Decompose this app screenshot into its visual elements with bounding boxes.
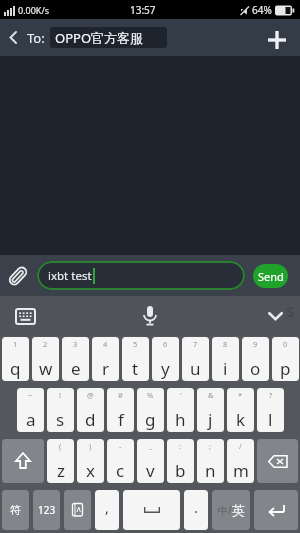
staticText: v	[146, 459, 155, 482]
button[interactable]: 8	[212, 337, 239, 381]
button[interactable]: ;	[197, 439, 224, 483]
button[interactable]: %	[137, 388, 164, 432]
button[interactable]: #	[107, 388, 134, 432]
staticText: To:	[27, 29, 45, 47]
staticText: 3	[73, 339, 78, 349]
button[interactable]: -	[107, 439, 134, 483]
button[interactable]: *	[227, 388, 254, 432]
staticText: x	[86, 459, 95, 482]
staticText: 符	[10, 503, 21, 517]
staticText: k	[236, 408, 246, 431]
button[interactable]: 0	[272, 337, 299, 381]
staticText: q	[10, 357, 21, 380]
staticText: b	[175, 459, 186, 482]
button[interactable]	[259, 296, 291, 336]
staticText: *	[238, 390, 243, 400]
staticText: &	[208, 390, 214, 400]
staticText: ixbt test	[48, 268, 92, 284]
button[interactable]: )	[77, 439, 104, 483]
staticText: %	[147, 390, 154, 400]
staticText: #	[118, 390, 123, 400]
staticText: 0	[283, 339, 288, 349]
button[interactable]: ?	[257, 388, 284, 432]
button[interactable]: 2	[32, 337, 59, 381]
staticText: OPPO官方客服	[55, 29, 144, 47]
staticText: ;	[209, 441, 212, 451]
button[interactable]: _	[137, 439, 164, 483]
staticText: (	[59, 441, 62, 451]
staticText: p	[280, 357, 291, 380]
button[interactable]: 中/	[212, 490, 250, 530]
staticText: 64%	[252, 3, 272, 17]
staticText: 1	[13, 339, 18, 349]
button[interactable]	[0, 255, 36, 296]
button[interactable]: '	[167, 388, 194, 432]
staticText: 英	[232, 502, 245, 518]
button[interactable]: /	[227, 439, 254, 483]
staticText: l	[268, 408, 273, 431]
button[interactable]	[257, 439, 298, 483]
staticText: d	[85, 408, 96, 431]
staticText: _	[149, 441, 153, 451]
button[interactable]: .	[184, 490, 208, 530]
button[interactable]: 5	[122, 337, 149, 381]
button[interactable]: 3	[62, 337, 89, 381]
staticText: 7	[193, 339, 198, 349]
staticText: -	[119, 441, 122, 451]
button[interactable]	[260, 19, 294, 56]
button[interactable]: OPPO官方客服	[50, 27, 167, 48]
staticText: 13:57	[130, 3, 156, 17]
staticText: ~	[28, 390, 33, 400]
staticText: a	[26, 408, 36, 431]
staticText: :	[179, 441, 182, 451]
button[interactable]: Send	[253, 264, 288, 288]
button[interactable]	[254, 490, 298, 530]
staticText: 8	[223, 339, 228, 349]
button[interactable]	[2, 439, 44, 483]
staticText: 6	[163, 339, 168, 349]
staticText: 2	[43, 339, 48, 349]
button[interactable]	[0, 19, 26, 56]
button[interactable]: ixbt test	[37, 261, 245, 290]
staticText: e	[71, 357, 81, 380]
staticText: f	[118, 408, 124, 431]
staticText: 123	[38, 503, 56, 517]
staticText: w	[39, 357, 53, 380]
button[interactable]: 9	[242, 337, 269, 381]
button[interactable]: &	[197, 388, 224, 432]
button[interactable]: ,	[95, 490, 119, 530]
button[interactable]	[9, 296, 41, 336]
staticText: s	[56, 408, 65, 431]
button[interactable]	[130, 296, 170, 336]
staticText: S	[286, 301, 295, 321]
staticText: j	[208, 408, 213, 431]
button[interactable]: 7	[182, 337, 209, 381]
button[interactable]: @	[77, 388, 104, 432]
button[interactable]: :	[167, 439, 194, 483]
staticText: r	[102, 357, 110, 380]
staticText: '	[180, 390, 182, 400]
staticText: Send	[258, 269, 284, 284]
button[interactable]: 123	[33, 490, 60, 530]
staticText: 4	[103, 339, 108, 349]
button[interactable]: ~	[17, 388, 44, 432]
staticText: .	[194, 498, 198, 517]
staticText: y	[161, 357, 170, 380]
button[interactable]: 符	[2, 490, 29, 530]
staticText: h	[175, 408, 186, 431]
button[interactable]	[64, 490, 91, 530]
button[interactable]: !	[47, 388, 74, 432]
staticText: ,	[105, 498, 109, 517]
button[interactable]: 4	[92, 337, 119, 381]
button[interactable]	[123, 490, 180, 530]
button[interactable]: 6	[152, 337, 179, 381]
staticText: 中/	[218, 503, 232, 517]
button[interactable]: 1	[2, 337, 29, 381]
button[interactable]: (	[47, 439, 74, 483]
staticText: g	[145, 408, 156, 431]
staticText: n	[205, 459, 216, 482]
staticText: 9	[253, 339, 258, 349]
staticText: i	[223, 357, 228, 380]
staticText: )	[89, 441, 92, 451]
staticText: ?	[269, 390, 273, 400]
